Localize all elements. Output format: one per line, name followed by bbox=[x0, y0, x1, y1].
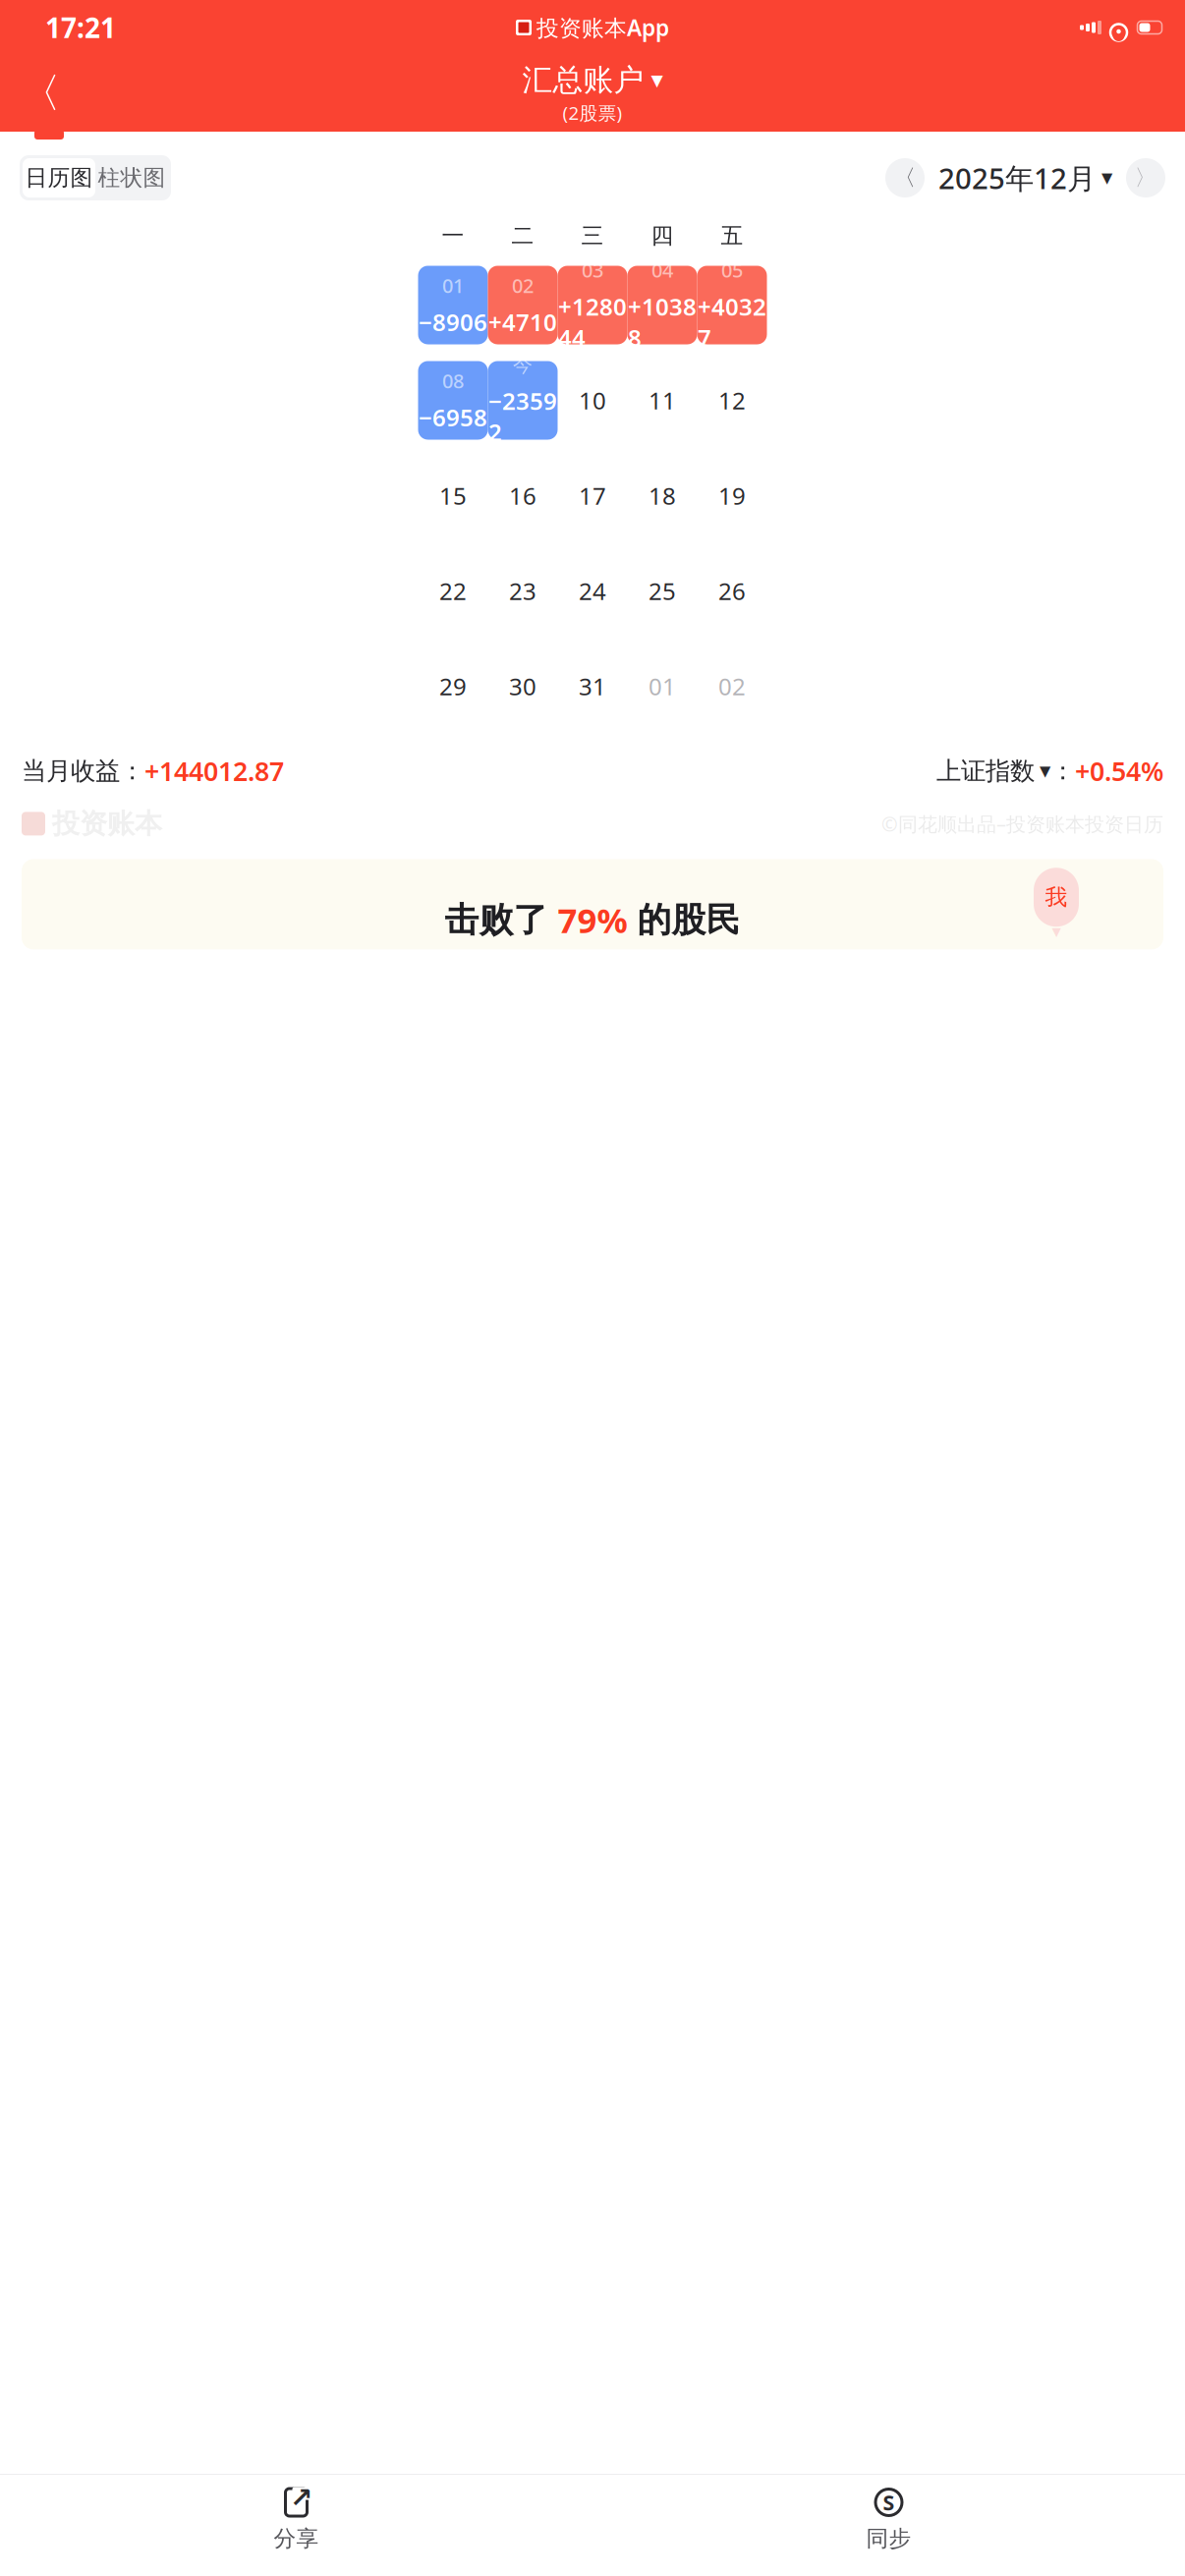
staticText: 我 bbox=[1045, 884, 1068, 911]
button[interactable]: 17 bbox=[558, 456, 627, 535]
staticText: 05 bbox=[721, 257, 743, 283]
button[interactable]: 11 bbox=[627, 361, 697, 440]
staticText: 79% bbox=[558, 897, 627, 943]
button[interactable]: 23 bbox=[488, 552, 558, 630]
staticText: +144012.87 bbox=[144, 754, 284, 788]
staticText: 19 bbox=[718, 480, 746, 511]
staticText: 当月收益： bbox=[22, 756, 144, 786]
staticText: ▼ bbox=[1101, 170, 1112, 186]
staticText: +4710 bbox=[488, 306, 557, 338]
staticText: 2025年12月 bbox=[938, 159, 1096, 197]
button[interactable]: 01 bbox=[627, 647, 697, 726]
button[interactable]: 12 bbox=[697, 361, 767, 440]
staticText: 08 bbox=[442, 368, 464, 394]
staticText: 24 bbox=[579, 575, 606, 607]
button[interactable]: 03 bbox=[558, 266, 627, 344]
staticText: 31 bbox=[579, 671, 606, 702]
staticText: 二 bbox=[511, 222, 534, 249]
staticText: 分享 bbox=[274, 2525, 319, 2552]
staticText: 29 bbox=[439, 671, 467, 702]
button[interactable]: 19 bbox=[697, 456, 767, 535]
staticText: 26 bbox=[718, 575, 746, 607]
button[interactable]: 04 bbox=[627, 266, 697, 344]
button[interactable]: 01 bbox=[418, 266, 488, 344]
staticText: 同步 bbox=[866, 2525, 911, 2552]
staticText: 12 bbox=[718, 385, 746, 416]
staticText: +0.54% bbox=[1075, 754, 1163, 788]
staticText: 一 bbox=[442, 222, 464, 249]
staticText: 02 bbox=[512, 272, 534, 299]
staticText: 22 bbox=[439, 575, 467, 607]
staticText: 投资账本App bbox=[536, 13, 669, 42]
staticText: 17:21 bbox=[45, 9, 116, 46]
staticText: 01 bbox=[649, 671, 676, 702]
staticText: 击败了 bbox=[445, 899, 558, 941]
staticText: 01 bbox=[442, 272, 464, 299]
staticText: 18 bbox=[649, 480, 676, 511]
button[interactable]: 02 bbox=[488, 266, 558, 344]
staticText: ▼ bbox=[1035, 763, 1050, 779]
staticText: 03 bbox=[582, 257, 603, 283]
staticText: 02 bbox=[718, 671, 746, 702]
staticText: 30 bbox=[509, 671, 536, 702]
staticText: 15 bbox=[439, 480, 467, 511]
staticText: 10 bbox=[579, 385, 606, 416]
staticText: 25 bbox=[649, 575, 676, 607]
button[interactable]: 05 bbox=[697, 266, 767, 344]
staticText: 〈 bbox=[894, 164, 916, 191]
button[interactable]: 今 bbox=[488, 361, 558, 440]
staticText: +40327 bbox=[698, 291, 766, 353]
staticText: 04 bbox=[651, 257, 673, 283]
staticText: 〈 bbox=[20, 68, 60, 118]
staticText: 三 bbox=[581, 222, 604, 249]
button[interactable]: 25 bbox=[627, 552, 697, 630]
staticText: 日历图 bbox=[25, 164, 93, 191]
staticText: 23 bbox=[509, 575, 536, 607]
staticText: 投资账本 bbox=[52, 807, 162, 841]
staticText: ： bbox=[1050, 756, 1075, 786]
button[interactable]: 10 bbox=[558, 361, 627, 440]
button[interactable]: 柱状图 bbox=[95, 158, 168, 197]
button[interactable]: 返回 bbox=[14, 67, 67, 120]
staticText: ▼ bbox=[651, 71, 663, 89]
staticText: −6958 bbox=[419, 402, 487, 433]
button[interactable]: 2025年12月 bbox=[938, 159, 1112, 197]
staticText: 今 bbox=[513, 353, 533, 377]
staticText: 11 bbox=[649, 385, 676, 416]
staticText: 17 bbox=[579, 480, 606, 511]
button[interactable]: 15 bbox=[418, 456, 488, 535]
button[interactable]: 02 bbox=[697, 647, 767, 726]
staticText: −23592 bbox=[488, 385, 557, 448]
staticText: ▾ bbox=[1052, 921, 1061, 942]
staticText: ©同花顺出品–投资账本投资日历 bbox=[881, 811, 1163, 837]
button[interactable]: 上证指数 bbox=[936, 754, 1163, 788]
button[interactable]: 16 bbox=[488, 456, 558, 535]
staticText: 汇总账户 bbox=[522, 62, 644, 99]
staticText: +128044 bbox=[558, 291, 627, 353]
button[interactable]: S bbox=[592, 2480, 1185, 2560]
button[interactable]: ↗ bbox=[0, 2480, 592, 2560]
staticText: 〉 bbox=[1134, 164, 1157, 191]
button[interactable]: 日历图 bbox=[23, 158, 95, 197]
button[interactable]: 08 bbox=[418, 361, 488, 440]
button[interactable]: 30 bbox=[488, 647, 558, 726]
button[interactable]: 26 bbox=[697, 552, 767, 630]
staticText: 柱状图 bbox=[98, 164, 166, 191]
button[interactable]: 22 bbox=[418, 552, 488, 630]
button[interactable]: 上个月 bbox=[885, 158, 925, 197]
button[interactable]: 29 bbox=[418, 647, 488, 726]
staticText: −8906 bbox=[419, 306, 487, 338]
staticText: 四 bbox=[651, 222, 674, 249]
button[interactable]: 24 bbox=[558, 552, 627, 630]
button[interactable]: 下个月 bbox=[1126, 158, 1165, 197]
button[interactable]: 31 bbox=[558, 647, 627, 726]
staticText: (2股票) bbox=[563, 101, 622, 125]
staticText: 五 bbox=[721, 222, 743, 249]
button[interactable]: 18 bbox=[627, 456, 697, 535]
staticText: 的股民 bbox=[627, 899, 740, 941]
staticText: ↗ bbox=[290, 2482, 312, 2513]
staticText: +10388 bbox=[628, 291, 697, 353]
staticText: 16 bbox=[509, 480, 536, 511]
button[interactable]: 汇总账户 bbox=[522, 62, 663, 99]
staticText: 上证指数 bbox=[936, 756, 1035, 786]
